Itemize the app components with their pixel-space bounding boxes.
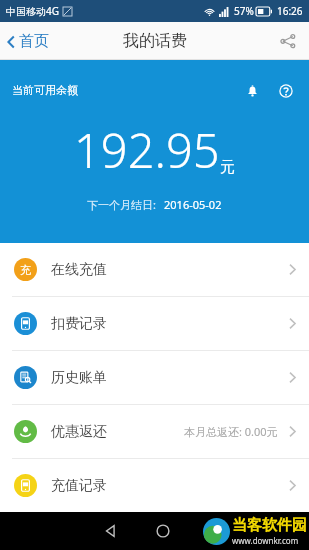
button[interactable]: 优惠返还	[0, 405, 309, 458]
staticText: 我的话费	[123, 31, 187, 51]
staticText: 中国移动4G	[6, 4, 59, 18]
staticText: 首页	[19, 32, 49, 51]
staticText: 扣费记录	[51, 315, 107, 333]
staticText: 当客软件园	[232, 516, 307, 535]
button[interactable]: 扣费记录	[0, 297, 309, 350]
button[interactable]: 历史账单	[0, 351, 309, 404]
button[interactable]: Notifications	[239, 78, 265, 104]
staticText: 192.95	[74, 118, 220, 182]
staticText: 充	[20, 263, 31, 277]
staticText: 2016-05-02	[164, 197, 222, 212]
staticText: 历史账单	[51, 369, 107, 387]
staticText: 下一个月结日:	[87, 197, 156, 212]
staticText: 当前可用余额	[12, 83, 78, 97]
staticText: 充值记录	[51, 477, 107, 495]
staticText: 本月总返还: 0.00元	[184, 424, 278, 439]
button[interactable]: Home	[146, 514, 180, 548]
button[interactable]: Help	[273, 78, 299, 104]
staticText: 在线充值	[51, 261, 107, 279]
staticText: 57%	[234, 4, 254, 18]
staticText: www.downkr.com	[232, 535, 299, 546]
button[interactable]: 首页	[0, 26, 57, 57]
button[interactable]: 充	[0, 243, 309, 296]
staticText: 元	[220, 158, 235, 177]
button[interactable]: Share	[273, 26, 303, 56]
staticText: 16:26	[277, 4, 303, 18]
staticText: 优惠返还	[51, 423, 107, 441]
button[interactable]: Back	[94, 514, 128, 548]
button[interactable]: 充值记录	[0, 459, 309, 512]
